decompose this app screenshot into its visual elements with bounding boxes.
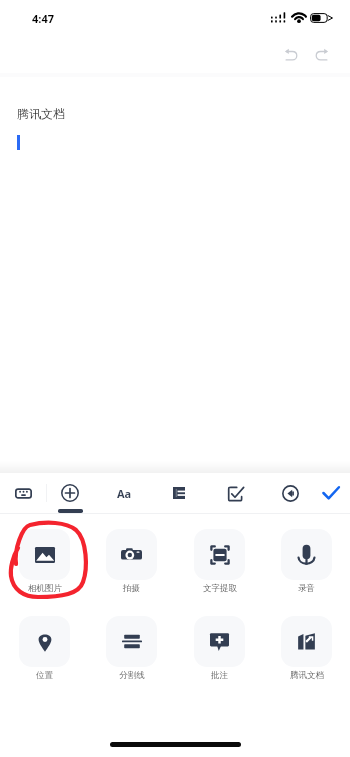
staticText: 相机图片 xyxy=(28,583,62,594)
staticText: Aa xyxy=(117,486,132,501)
button[interactable]: 腾讯文档 xyxy=(271,616,341,688)
button[interactable]: Paragraph xyxy=(161,475,197,511)
button[interactable]: Keyboard xyxy=(5,475,41,511)
staticText: 腾讯文档 xyxy=(290,670,324,681)
button[interactable]: 位置 xyxy=(9,616,79,688)
button[interactable]: 批注 xyxy=(184,616,254,688)
staticText: 位置 xyxy=(36,670,53,681)
button[interactable]: Insert xyxy=(50,473,90,515)
staticText: 4:47 xyxy=(32,11,54,26)
button[interactable]: Done xyxy=(313,475,349,511)
button[interactable]: Redo xyxy=(308,41,334,67)
button[interactable]: 分割线 xyxy=(96,616,166,688)
staticText: 文字提取 xyxy=(203,583,237,594)
button[interactable]: 录音 xyxy=(271,529,341,601)
staticText: 批注 xyxy=(211,670,228,681)
staticText: 腾讯文档 xyxy=(17,106,65,121)
staticText: 分割线 xyxy=(119,670,145,681)
button[interactable]: Checklist xyxy=(217,475,253,511)
button[interactable]: 文字提取 xyxy=(184,529,254,601)
button[interactable]: 相机图片 xyxy=(9,529,79,601)
button[interactable]: Undo xyxy=(278,41,304,67)
button[interactable]: History xyxy=(272,475,308,511)
staticText: 拍摄 xyxy=(123,583,140,594)
button[interactable]: Text style xyxy=(106,475,142,511)
button[interactable]: 拍摄 xyxy=(96,529,166,601)
staticText: 录音 xyxy=(298,583,315,594)
